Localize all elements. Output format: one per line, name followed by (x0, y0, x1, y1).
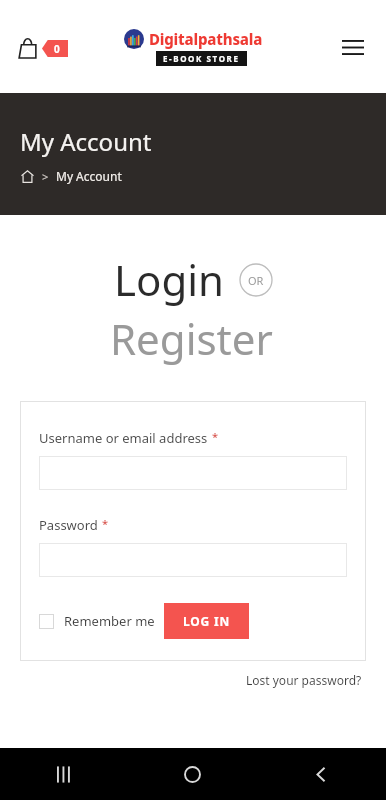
staticText: My Account (56, 168, 122, 184)
button[interactable] (39, 543, 347, 577)
staticText: Lost your password? (246, 672, 362, 688)
button[interactable]: Menu (336, 34, 370, 61)
staticText: 0 (54, 42, 60, 56)
staticText: Username or email address (39, 429, 208, 447)
staticText: Password (39, 516, 98, 534)
button[interactable]: Lost your password? (242, 669, 366, 691)
staticText: OR (248, 273, 264, 288)
button[interactable]: LOG IN (164, 603, 249, 639)
button[interactable] (39, 456, 347, 490)
staticText: > (42, 169, 49, 184)
staticText: My Account (20, 125, 152, 158)
button[interactable]: Login (114, 251, 225, 308)
staticText: Digitalpathsala (149, 29, 263, 49)
button[interactable]: Digitalpathsala E-Book Store home (124, 29, 263, 66)
staticText: E-BOOK STORE (163, 53, 240, 64)
button[interactable]: Home (20, 169, 35, 184)
staticText: LOG IN (183, 613, 230, 629)
staticText: * (102, 516, 109, 531)
button[interactable]: Register (110, 310, 273, 367)
button[interactable]: Cart, 0 items (14, 34, 72, 62)
button[interactable]: Recent apps (44, 754, 85, 795)
button[interactable]: Remember me (39, 608, 155, 634)
button[interactable]: Back (301, 754, 342, 795)
staticText: Remember me (64, 612, 155, 630)
button[interactable]: Home (172, 754, 213, 795)
staticText: * (212, 429, 219, 444)
